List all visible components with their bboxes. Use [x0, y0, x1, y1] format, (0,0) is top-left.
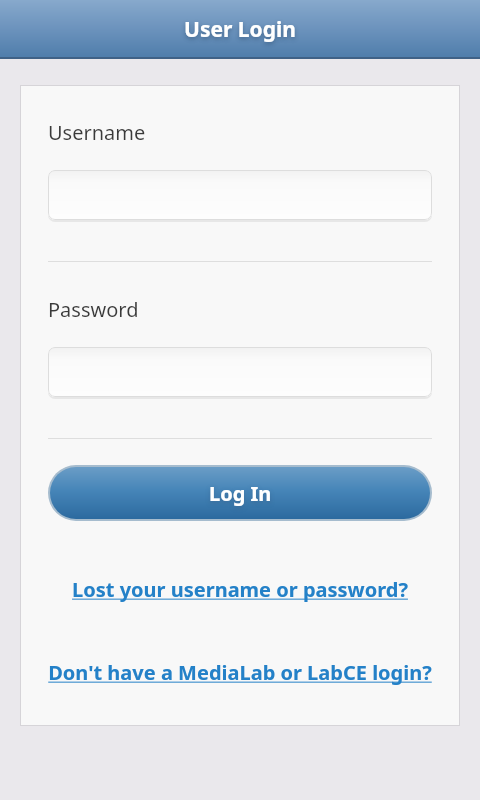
- button[interactable]: Lost your username or password?: [48, 576, 432, 603]
- staticText: Don't have a MediaLab or LabCE login?: [48, 659, 432, 686]
- button[interactable]: Don't have a MediaLab or LabCE login?: [48, 659, 432, 686]
- staticText: Username: [48, 119, 146, 146]
- button[interactable]: [48, 170, 432, 220]
- button[interactable]: Log In: [50, 467, 430, 519]
- staticText: Lost your username or password?: [48, 576, 432, 603]
- button[interactable]: [48, 347, 432, 397]
- staticText: User Login: [184, 15, 296, 44]
- staticText: Password: [48, 296, 139, 323]
- staticText: Log In: [209, 480, 272, 507]
